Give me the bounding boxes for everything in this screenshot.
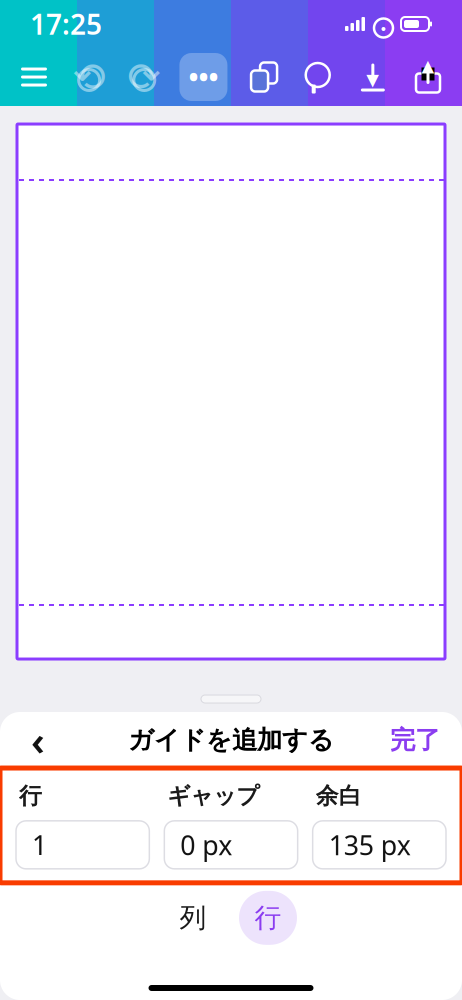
staticText: 列 — [179, 901, 206, 934]
staticText: ▾ — [366, 65, 379, 93]
staticText: 1 — [32, 827, 47, 862]
staticText: ⟲ — [72, 54, 106, 100]
button[interactable]: Undo — [69, 57, 109, 97]
staticText: ガイドを追加する — [128, 724, 334, 755]
staticText: 17:25 — [30, 5, 102, 43]
staticText: 135 px — [329, 827, 411, 862]
button[interactable]: Pages — [243, 57, 283, 97]
staticText: 行 — [254, 901, 281, 934]
staticText: ギャップ — [167, 782, 259, 810]
staticText: ‹ — [31, 713, 45, 766]
staticText: 行 — [19, 782, 42, 810]
button[interactable]: 列 — [165, 891, 221, 945]
button[interactable]: 0 px — [164, 821, 298, 869]
button[interactable]: Back — [16, 718, 60, 762]
button[interactable]: 完了 — [384, 718, 446, 762]
staticText: 0 px — [180, 827, 232, 862]
staticText: ••• — [188, 59, 218, 95]
button[interactable]: Menu — [14, 57, 54, 97]
button[interactable]: 135 px — [313, 821, 446, 869]
button[interactable]: More options — [179, 53, 227, 101]
staticText: 余白 — [316, 782, 362, 810]
button[interactable]: 1 — [16, 821, 149, 869]
staticText: ▴ — [421, 51, 434, 79]
button[interactable]: Download — [353, 57, 393, 97]
staticText: ⟳ — [127, 54, 161, 100]
button[interactable]: Redo — [124, 57, 164, 97]
staticText: 完了 — [390, 724, 440, 755]
button[interactable]: Share — [408, 57, 448, 97]
button[interactable]: 行 — [239, 891, 297, 945]
button[interactable]: Comments — [298, 57, 338, 97]
